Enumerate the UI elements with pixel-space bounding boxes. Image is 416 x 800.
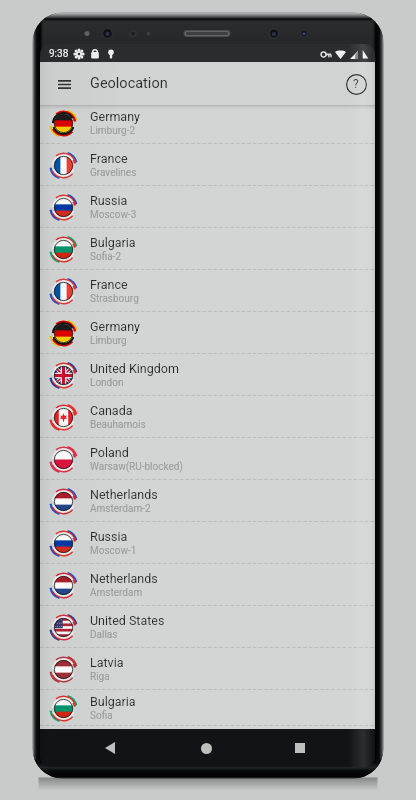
staticText: Moscow-1 xyxy=(90,545,137,557)
button[interactable]: Home xyxy=(185,731,227,765)
staticText: Canada xyxy=(90,403,133,418)
staticText: Germany xyxy=(90,319,140,334)
button[interactable]: Help xyxy=(343,71,369,97)
staticText: Russia xyxy=(90,193,128,208)
staticText: Dallas xyxy=(90,629,118,641)
button[interactable]: Russia xyxy=(40,186,375,228)
staticText: Sofia xyxy=(90,710,113,722)
staticText: France xyxy=(90,277,128,292)
staticText: Russia xyxy=(90,529,128,544)
staticText: Riga xyxy=(90,671,110,683)
button[interactable]: Canada xyxy=(40,396,375,438)
staticText: 9:38 xyxy=(49,48,69,60)
staticText: Warsaw(RU-blocked) xyxy=(90,461,183,473)
staticText: ? xyxy=(353,77,359,91)
staticText: United States xyxy=(90,613,165,628)
staticText: Amsterdam-2 xyxy=(90,503,151,515)
button[interactable]: Bulgaria xyxy=(40,690,375,726)
button[interactable]: Netherlands xyxy=(40,480,375,522)
staticText: Limburg xyxy=(90,335,127,347)
staticText: France xyxy=(90,151,128,166)
staticText: Germany xyxy=(90,109,140,124)
button[interactable]: Germany xyxy=(40,105,375,144)
staticText: Sofia-2 xyxy=(90,251,122,263)
staticText: Geolocation xyxy=(90,75,168,92)
button[interactable]: Bulgaria xyxy=(40,228,375,270)
staticText: Limburg-2 xyxy=(90,125,136,137)
staticText: Gravelines xyxy=(90,167,137,179)
button[interactable]: Recent apps xyxy=(279,731,321,765)
staticText: Amsterdam xyxy=(90,587,143,599)
button[interactable]: Netherlands xyxy=(40,564,375,606)
staticText: Bulgaria xyxy=(90,235,136,250)
button[interactable]: Open navigation menu xyxy=(51,69,77,99)
staticText: Latvia xyxy=(90,655,124,670)
staticText: Netherlands xyxy=(90,487,158,502)
button[interactable]: France xyxy=(40,270,375,312)
button[interactable]: France xyxy=(40,144,375,186)
staticText: Beauharnois xyxy=(90,419,146,431)
button[interactable]: Back xyxy=(89,731,131,765)
button[interactable]: United States xyxy=(40,606,375,648)
button[interactable]: Russia xyxy=(40,522,375,564)
staticText: Strasbourg xyxy=(90,293,139,305)
button[interactable]: Poland xyxy=(40,438,375,480)
button[interactable]: Latvia xyxy=(40,648,375,690)
staticText: London xyxy=(90,377,124,389)
staticText: United Kingdom xyxy=(90,361,179,376)
staticText: Netherlands xyxy=(90,571,158,586)
staticText: Moscow-3 xyxy=(90,209,137,221)
staticText: Poland xyxy=(90,445,129,460)
staticText: Bulgaria xyxy=(90,694,136,709)
button[interactable]: Germany xyxy=(40,312,375,354)
button[interactable]: United Kingdom xyxy=(40,354,375,396)
